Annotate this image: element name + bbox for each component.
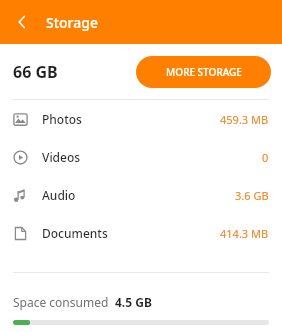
staticText: Audio (42, 187, 76, 203)
staticText: 66 GB (13, 61, 58, 83)
staticText: 4.5 GB (115, 294, 152, 310)
button[interactable]: Videos (0, 138, 282, 176)
staticText: 0 (262, 150, 269, 165)
staticText: Videos (42, 149, 81, 165)
staticText: Space consumed (13, 294, 109, 310)
staticText: Photos (42, 111, 82, 127)
button[interactable]: MORE STORAGE (136, 56, 271, 88)
button[interactable]: Photos (0, 100, 282, 138)
staticText: 459.3 MB (220, 112, 269, 127)
button[interactable]: Back (8, 8, 36, 36)
staticText: MORE STORAGE (166, 65, 242, 79)
button[interactable]: Audio (0, 176, 282, 214)
staticText: Documents (42, 225, 108, 241)
button[interactable]: Documents (0, 214, 282, 252)
staticText: 3.6 GB (235, 188, 269, 203)
staticText: Storage (46, 13, 98, 32)
staticText: 414.3 MB (220, 226, 269, 241)
